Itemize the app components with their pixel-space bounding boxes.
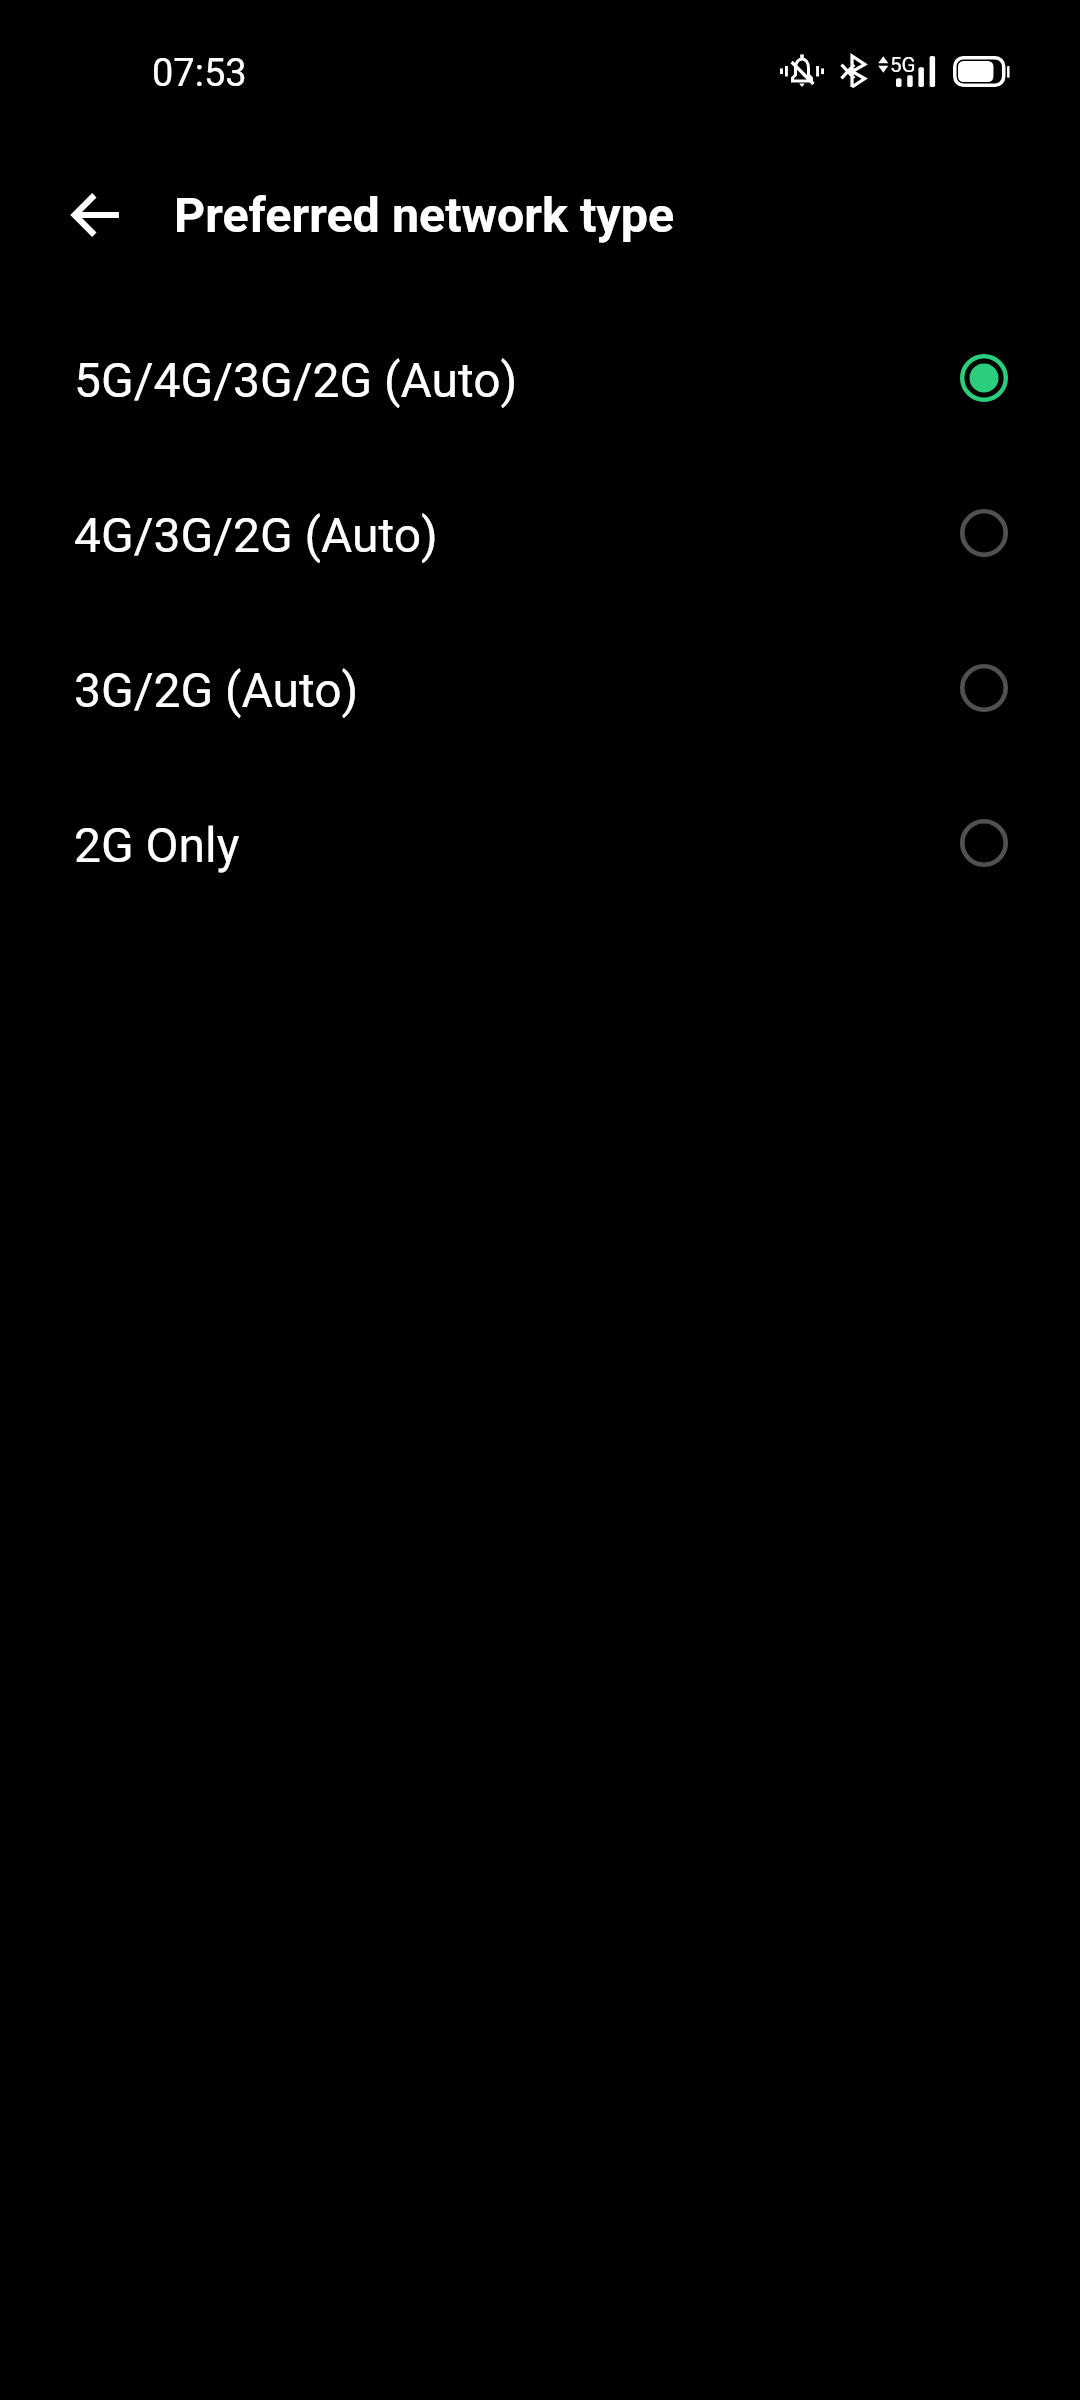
other: Mobile signal full <box>896 56 936 87</box>
staticText: 07:53 <box>152 51 247 95</box>
button[interactable]: 2G Only <box>0 768 1080 923</box>
staticText: 3G/2G (Auto) <box>74 662 359 718</box>
button[interactable]: Navigate up <box>49 175 145 255</box>
button[interactable]: 4G/3G/2G (Auto) <box>0 458 1080 613</box>
staticText: 5G/4G/3G/2G (Auto) <box>74 352 518 408</box>
staticText: 2G Only <box>74 817 240 873</box>
staticText: 4G/3G/2G (Auto) <box>74 507 438 563</box>
other: Bluetooth on <box>841 56 865 87</box>
other: Mobile data activity <box>878 56 889 73</box>
button[interactable]: 5G/4G/3G/2G (Auto) <box>0 303 1080 458</box>
button[interactable]: 3G/2G (Auto) <box>0 613 1080 768</box>
staticText: Preferred network type <box>174 187 675 244</box>
other: Battery <box>953 56 1011 87</box>
staticText: 5G <box>890 53 916 77</box>
other: Ringer set to vibrate <box>778 47 826 95</box>
